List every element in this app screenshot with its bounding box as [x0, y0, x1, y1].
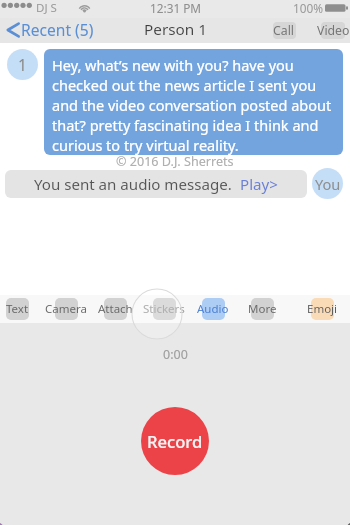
staticText: Camera: [45, 301, 87, 317]
button[interactable]: Record: [141, 407, 209, 475]
button[interactable]: You: [312, 168, 343, 199]
staticText: Record: [147, 430, 203, 453]
button[interactable]: 1: [7, 49, 38, 80]
button[interactable]: Stickers: [124, 295, 204, 323]
staticText: Hey, what’s new with you? have you check…: [52, 55, 337, 155]
button[interactable]: Emoji: [282, 295, 350, 323]
button[interactable]: Attach: [75, 295, 155, 323]
staticText: © 2016 D.J. Sherrets: [116, 153, 234, 170]
button[interactable]: More: [222, 295, 302, 323]
staticText: Emoji: [307, 301, 338, 317]
staticText: Text: [6, 301, 29, 317]
button[interactable]: Text: [0, 295, 57, 323]
staticText: DJ S: [36, 0, 57, 16]
staticText: Attach: [98, 301, 133, 317]
staticText: Call: [273, 22, 295, 39]
button[interactable]: Video: [293, 22, 350, 39]
staticText: 12:31 PM: [150, 0, 202, 16]
button[interactable]: Call: [244, 22, 324, 39]
staticText: Audio: [197, 301, 229, 317]
staticText: 1: [18, 54, 27, 75]
staticText: More: [248, 301, 277, 317]
staticText: Video: [317, 22, 350, 39]
button[interactable]: You sent an audio message.: [5, 170, 307, 198]
staticText: 100%: [293, 0, 324, 16]
button[interactable]: Camera: [26, 295, 106, 323]
staticText: Play>: [240, 174, 278, 195]
staticText: You: [315, 174, 341, 194]
button[interactable]: Hey, what’s new with you? have you check…: [44, 49, 343, 155]
button[interactable]: Recent (5): [0, 18, 95, 43]
staticText: Person 1: [144, 19, 207, 40]
button[interactable]: Audio: [173, 295, 253, 323]
staticText: 0:00: [163, 346, 188, 363]
staticText: Recent (5): [21, 19, 94, 40]
staticText: You sent an audio message.: [34, 174, 240, 195]
staticText: Stickers: [143, 301, 185, 317]
